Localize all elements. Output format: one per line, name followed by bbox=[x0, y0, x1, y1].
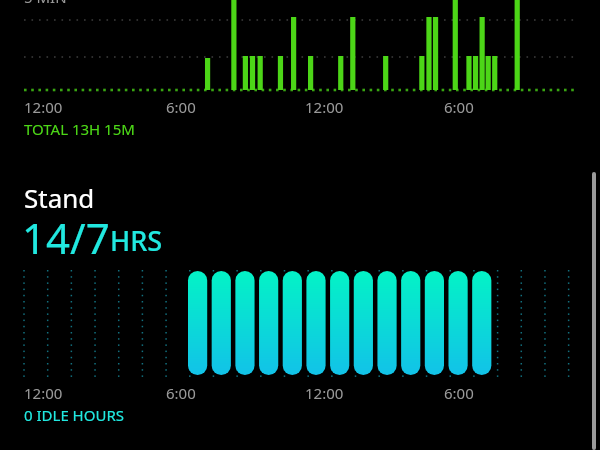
button[interactable]: Activity charts: Exercise and Stand bbox=[0, 0, 600, 450]
